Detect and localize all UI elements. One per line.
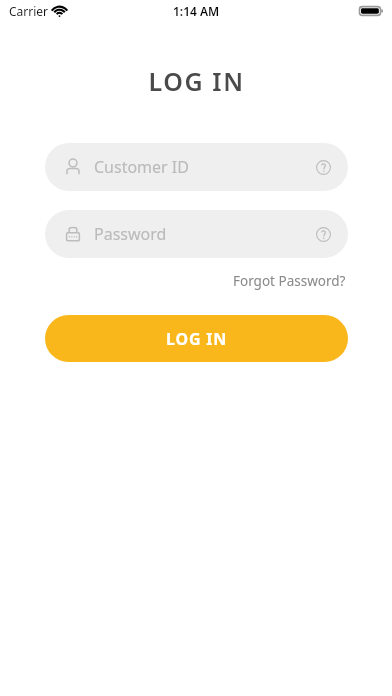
button[interactable]: LOG IN: [45, 315, 348, 362]
staticText: 1:14 AM: [173, 3, 220, 19]
staticText: Password: [94, 223, 312, 245]
button[interactable]: Help for Customer ID: [312, 156, 334, 178]
staticText: Carrier: [9, 3, 49, 19]
staticText: Forgot Password?: [233, 272, 346, 290]
button[interactable]: Forgot Password?: [231, 270, 348, 292]
button[interactable]: Customer ID: [45, 143, 348, 191]
staticText: LOG IN: [166, 328, 228, 350]
button[interactable]: Password: [45, 210, 348, 258]
button[interactable]: Help for Password: [312, 223, 334, 245]
staticText: Customer ID: [94, 156, 312, 178]
staticText: LOG IN: [148, 64, 245, 98]
